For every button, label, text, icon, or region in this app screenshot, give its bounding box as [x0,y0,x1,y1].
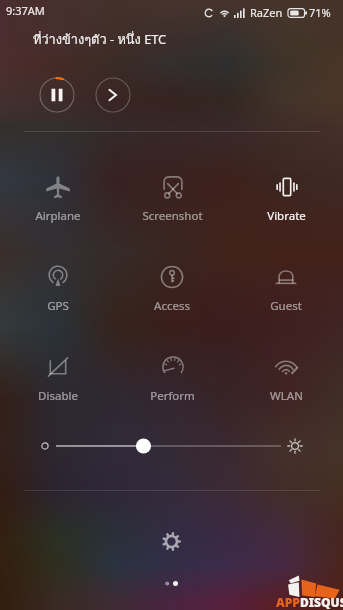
staticText: 9:37AM [6,3,45,18]
staticText: 71% [309,5,331,20]
button[interactable]: Pause [39,77,75,113]
button[interactable]: Next track [95,77,131,113]
button[interactable]: Guest [229,243,343,333]
button[interactable]: WLAN [229,333,343,423]
staticText: Screenshot [142,208,203,224]
button[interactable]: Access [115,243,229,333]
button[interactable]: Brightness [0,430,343,462]
staticText: Airplane [35,208,81,224]
staticText: WLAN [270,388,303,404]
staticText: ที่ว่างข้างๆตัว - หนึ่ง ETC [33,29,167,49]
button[interactable]: Settings [157,527,186,556]
staticText: Disable [38,388,78,404]
staticText: Perform [150,388,195,404]
staticText: Vibrate [267,208,306,224]
staticText: DISQUS [300,594,343,610]
staticText: Access [154,298,190,314]
button[interactable]: Airplane [0,153,115,243]
staticText: Guest [270,298,302,314]
button[interactable]: Vibrate [229,153,343,243]
button[interactable]: GPS [0,243,115,333]
staticText: GPS [47,298,69,314]
button[interactable]: Screenshot [115,153,229,243]
staticText: RaZen [250,5,283,20]
button[interactable]: Disable [0,333,115,423]
staticText: APP [276,594,300,610]
button[interactable]: Perform [115,333,229,423]
